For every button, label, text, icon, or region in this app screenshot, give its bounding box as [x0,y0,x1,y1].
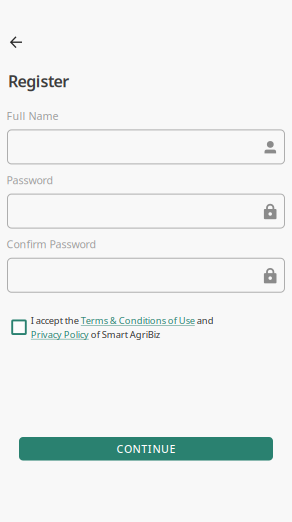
button[interactable]: Back [0,0,32,58]
button[interactable]: CONTINUE [19,437,273,460]
staticText: Confirm Password [6,237,96,251]
staticText: and [195,314,214,327]
staticText: Privacy Policy [31,328,89,340]
staticText: CONTINUE [116,442,176,456]
staticText: Register [8,70,69,92]
staticText: I accept the [31,314,81,327]
button[interactable]: I accept the Terms & Conditions of Use a… [0,318,292,340]
button[interactable]: Password [7,194,284,228]
button[interactable]: Confirm Password [7,258,284,292]
staticText: Full Name [6,109,58,123]
staticText: Password [6,173,53,187]
staticText: Terms & Conditions of Use [81,314,195,327]
staticText: of Smart AgriBiz [89,328,160,340]
button[interactable]: Full Name [7,130,284,164]
